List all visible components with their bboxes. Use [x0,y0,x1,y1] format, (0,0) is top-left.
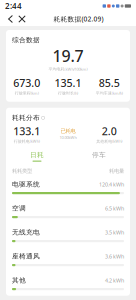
staticText: 综合数据 [12,36,40,44]
staticText: 行驶耗电(kWh) [14,139,40,144]
staticText: 已耗电 [60,128,75,134]
staticText: 120.4 kWh [99,181,124,188]
staticText: 19.7 [52,45,83,66]
staticText: 日耗 [30,151,44,159]
button[interactable]: Back [5,12,16,25]
staticText: 135.1 [54,76,81,90]
button[interactable]: 日耗 [6,148,68,165]
staticText: 10.00kWh [59,135,76,140]
staticText: 其他 [12,276,26,284]
staticText: 6.5 kWh [105,205,124,212]
staticText: 空调 [12,204,26,212]
staticText: 座椅通风 [12,252,40,260]
staticText: 无线充电 [12,228,40,236]
staticText: 电驱系统 [12,180,40,188]
staticText: 2.0 [102,124,117,138]
staticText: 行驶时长(h) [58,90,78,96]
staticText: 133.1 [13,124,40,138]
button[interactable]: 停车 [68,148,130,165]
staticText: 4.2 kWh [105,277,124,284]
button[interactable]: Close [16,12,28,25]
staticText: 其他耗电(kWh) [96,139,122,144]
staticText: 85.5 [99,76,120,90]
staticText: 耗耗分布 [12,114,40,122]
staticText: 2:44 [5,1,22,11]
staticText: 停车 [92,151,106,159]
staticText: 3.6 kWh [105,253,124,260]
staticText: 行驶里程(km) [15,90,39,96]
staticText: 平均车速(km/h) [96,90,123,96]
staticText: 耗电量 [109,168,124,174]
staticText: 平均电耗(kWh/100km) [48,66,87,72]
staticText: 3.5 kWh [105,229,124,236]
staticText: 673.0 [13,76,40,90]
staticText: 耗耗类型 [12,168,32,174]
staticText: 耗耗数据(02.09) [53,15,103,23]
